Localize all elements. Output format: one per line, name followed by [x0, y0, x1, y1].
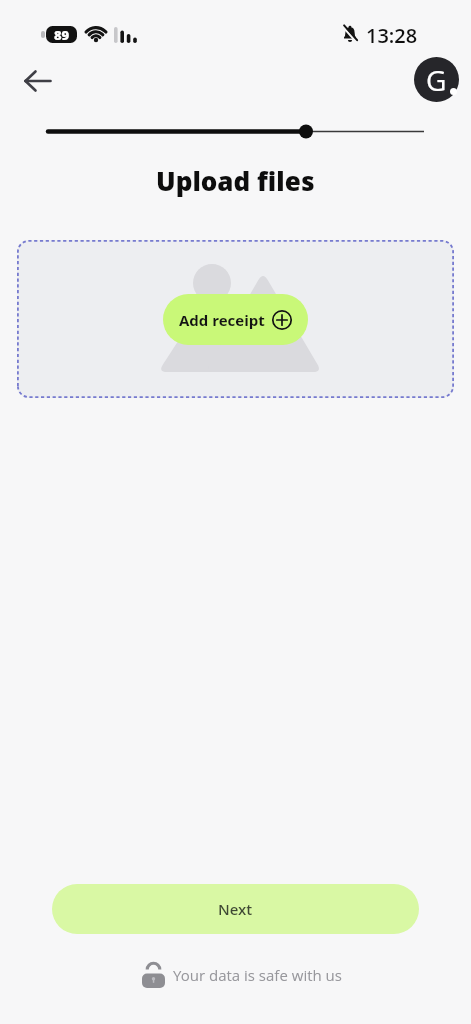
button[interactable] [14, 60, 62, 102]
staticText: G [426, 61, 447, 99]
staticText: Upload files [156, 163, 315, 198]
button[interactable]: Next [52, 884, 419, 934]
staticText: 89 [54, 26, 70, 43]
staticText: Add receipt [179, 310, 265, 330]
staticText: Next [218, 899, 253, 919]
button[interactable]: Add receipt [163, 294, 308, 345]
staticText: Your data is safe with us [173, 965, 342, 985]
staticText: 13:28 [366, 22, 418, 49]
